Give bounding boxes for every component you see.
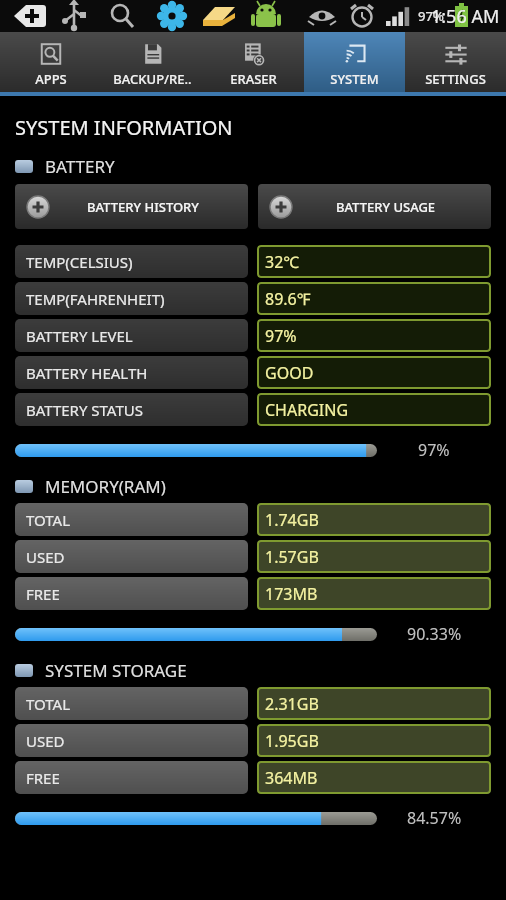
staticText: BACKUP/RE.. — [113, 70, 192, 88]
button[interactable]: 1.95GB — [257, 724, 491, 757]
staticText: 2.31GB — [265, 693, 319, 715]
staticText: BATTERY — [45, 155, 115, 178]
button[interactable]: FREE — [15, 577, 248, 610]
button[interactable]: GOOD — [257, 356, 491, 389]
staticText: SYSTEM STORAGE — [45, 659, 187, 682]
staticText: SYSTEM — [330, 70, 379, 88]
staticText: 97% — [265, 325, 297, 347]
button[interactable]: 89.6℉ — [257, 282, 491, 315]
staticText: USED — [26, 547, 65, 567]
staticText: 90.33% — [407, 623, 462, 645]
staticText: SETTINGS — [425, 70, 486, 88]
button[interactable]: BATTERY STATUS — [15, 393, 248, 426]
button[interactable]: FREE — [15, 761, 248, 794]
button[interactable]: TOTAL — [15, 687, 248, 720]
staticText: 1.74GB — [265, 509, 319, 531]
button[interactable]: SYSTEM STORAGE — [15, 659, 491, 682]
button[interactable]: 1.74GB — [257, 503, 491, 536]
button[interactable]: TOTAL — [15, 503, 248, 536]
button[interactable]: 364MB — [257, 761, 491, 794]
staticText: BATTERY LEVEL — [26, 326, 133, 346]
staticText: BATTERY USAGE — [336, 198, 436, 216]
staticText: 89.6℉ — [265, 288, 311, 310]
staticText: 32℃ — [265, 251, 300, 273]
button[interactable]: 2.31GB — [257, 687, 491, 720]
button[interactable]: SYSTEM — [304, 32, 405, 92]
button[interactable]: 97% — [257, 319, 491, 352]
staticText: BATTERY STATUS — [26, 400, 143, 420]
button[interactable]: 1.57GB — [257, 540, 491, 573]
staticText: CHARGING — [265, 399, 349, 421]
button[interactable]: BACKUP/RE.. — [102, 32, 203, 92]
staticText: 1:56 AM — [431, 4, 500, 29]
staticText: 97% — [418, 7, 444, 25]
staticText: ERASER — [230, 70, 277, 88]
staticText: APPS — [35, 70, 67, 88]
button[interactable]: MEMORY(RAM) — [15, 475, 491, 498]
button[interactable]: BATTERY USAGE — [258, 184, 491, 229]
button[interactable]: BATTERY HEALTH — [15, 356, 248, 389]
staticText: 1.57GB — [265, 546, 319, 568]
staticText: TEMP(CELSIUS) — [26, 252, 133, 272]
staticText: FREE — [26, 768, 60, 788]
staticText: FREE — [26, 584, 60, 604]
button[interactable]: ERASER — [203, 32, 304, 92]
button[interactable]: TEMP(CELSIUS) — [15, 245, 248, 278]
staticText: 364MB — [265, 767, 318, 789]
button[interactable]: USED — [15, 724, 248, 757]
staticText: BATTERY HEALTH — [26, 363, 148, 383]
staticText: MEMORY(RAM) — [45, 475, 166, 498]
button[interactable]: TEMP(FAHRENHEIT) — [15, 282, 248, 315]
button[interactable]: SETTINGS — [405, 32, 506, 92]
button[interactable]: CHARGING — [257, 393, 491, 426]
button[interactable]: BATTERY HISTORY — [15, 184, 248, 229]
staticText: BATTERY HISTORY — [87, 198, 199, 216]
staticText: GOOD — [265, 362, 314, 384]
button[interactable]: BATTERY — [15, 155, 491, 178]
staticText: 84.57% — [407, 807, 462, 829]
button[interactable]: APPS — [0, 32, 102, 92]
staticText: TOTAL — [26, 694, 71, 714]
button[interactable]: SYSTEM INFORMATION — [15, 114, 233, 141]
staticText: 1.95GB — [265, 730, 319, 752]
staticText: TEMP(FAHRENHEIT) — [26, 289, 165, 309]
staticText: 173MB — [265, 583, 318, 605]
button[interactable]: 32℃ — [257, 245, 491, 278]
button[interactable]: BATTERY LEVEL — [15, 319, 248, 352]
staticText: USED — [26, 731, 65, 751]
staticText: 97% — [418, 439, 450, 461]
button[interactable]: 173MB — [257, 577, 491, 610]
button[interactable]: USED — [15, 540, 248, 573]
staticText: TOTAL — [26, 510, 71, 530]
